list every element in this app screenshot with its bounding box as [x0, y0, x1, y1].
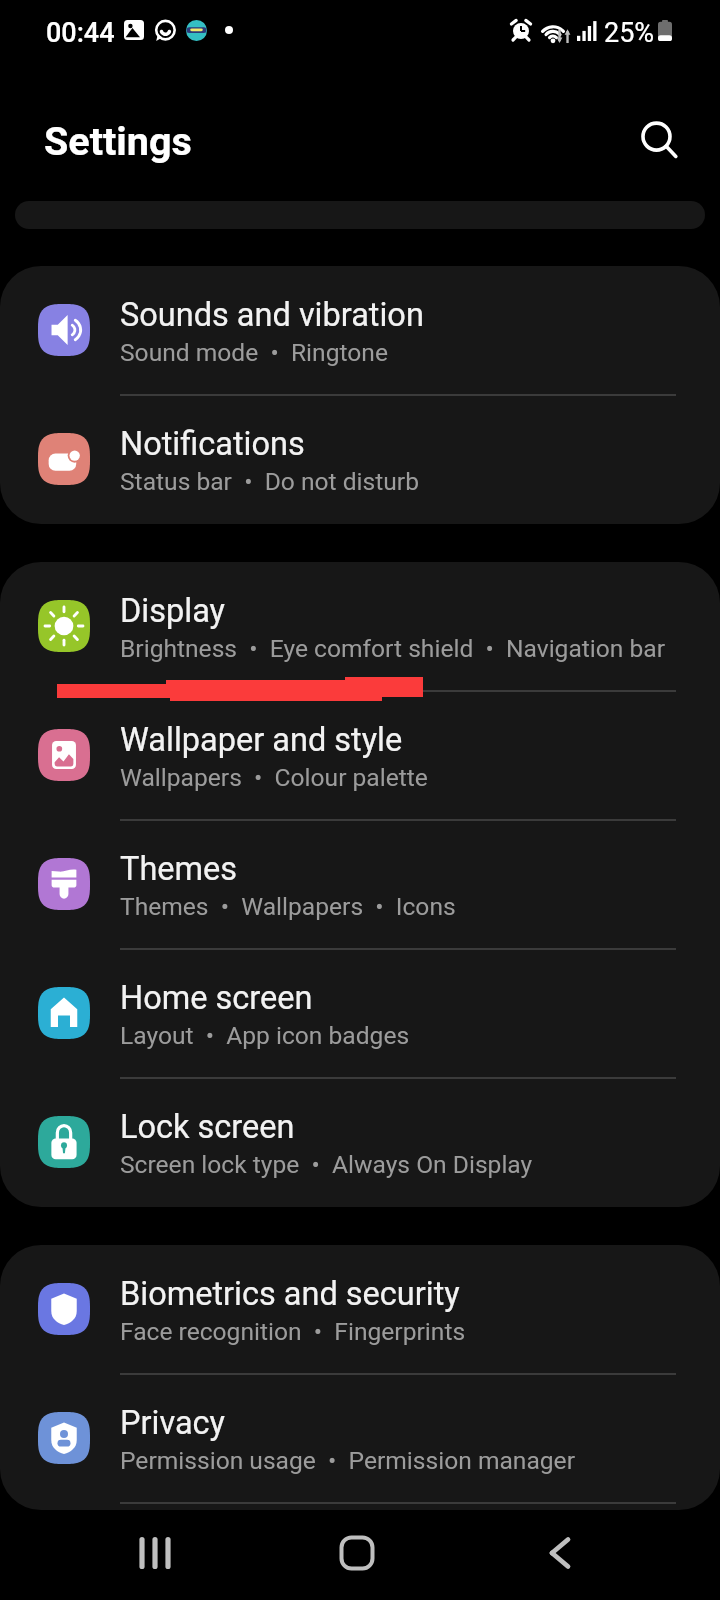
staticText: Privacy	[120, 1404, 225, 1442]
staticText: Face recognition • Fingerprints	[120, 1317, 466, 1346]
button[interactable]: Themes	[0, 820, 720, 949]
button[interactable]: Privacy	[0, 1374, 720, 1503]
staticText: Home screen	[120, 979, 313, 1017]
staticText: Brightness • Eye comfort shield • Naviga…	[120, 634, 666, 663]
staticText: Display	[120, 592, 225, 630]
staticText: Themes • Wallpapers • Icons	[120, 892, 456, 921]
staticText: Settings	[44, 118, 192, 164]
button[interactable]: Recents	[115, 1530, 195, 1576]
button[interactable]: Display	[0, 562, 720, 691]
staticText: Status bar • Do not disturb	[120, 467, 419, 496]
staticText: Biometrics and security	[120, 1275, 460, 1313]
staticText: Wallpaper and style	[120, 721, 403, 759]
staticText: Themes	[120, 850, 238, 888]
staticText: Sound mode • Ringtone	[120, 338, 388, 367]
button[interactable]: Home screen	[0, 949, 720, 1078]
button[interactable]: Sounds and vibration	[0, 266, 720, 395]
staticText: Lock screen	[120, 1108, 295, 1146]
button[interactable]: Back	[518, 1530, 598, 1576]
staticText: 25%	[604, 17, 655, 49]
button[interactable]: Search	[624, 105, 696, 177]
button[interactable]: Lock screen	[0, 1078, 720, 1207]
staticText: 00:44	[46, 17, 115, 49]
staticText: Sounds and vibration	[120, 296, 424, 334]
button[interactable]: Wallpaper and style	[0, 691, 720, 820]
staticText: Permission usage • Permission manager	[120, 1446, 575, 1475]
staticText: Screen lock type • Always On Display	[120, 1150, 533, 1179]
button[interactable]: Biometrics and security	[0, 1245, 720, 1374]
button[interactable]: Notifications	[0, 395, 720, 524]
staticText: Layout • App icon badges	[120, 1021, 410, 1050]
button[interactable]: Home	[317, 1530, 397, 1576]
staticText: Notifications	[120, 425, 305, 463]
staticText: Wallpapers • Colour palette	[120, 763, 428, 792]
